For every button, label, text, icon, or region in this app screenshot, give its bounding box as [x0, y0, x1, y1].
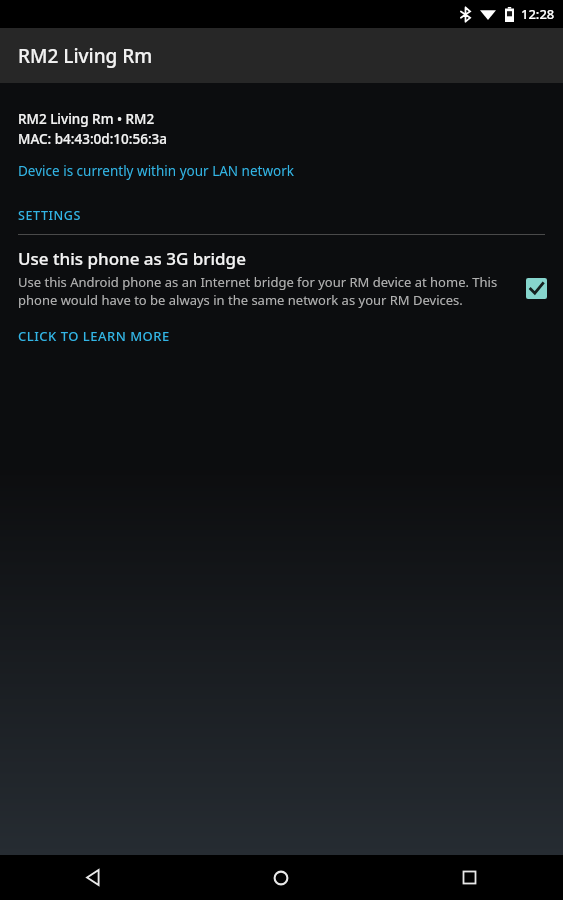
button[interactable]: Toggle 3G bridge	[523, 275, 549, 301]
button[interactable]: Use this phone as 3G bridge	[0, 245, 563, 313]
staticText: MAC: b4:43:0d:10:56:3a	[18, 130, 168, 148]
button[interactable]: Back	[0, 855, 187, 900]
staticText: CLICK TO LEARN MORE	[18, 327, 170, 345]
button[interactable]: Recent apps	[375, 855, 563, 900]
staticText: SETTINGS	[18, 207, 82, 224]
button[interactable]: CLICK TO LEARN MORE	[18, 327, 170, 345]
staticText: RM2 Living Rm	[18, 43, 153, 69]
button[interactable]: Home	[187, 855, 375, 900]
button[interactable]: Device is currently within your LAN netw…	[18, 162, 295, 180]
staticText: Use this Android phone as an Internet br…	[18, 273, 517, 309]
staticText: Device is currently within your LAN netw…	[18, 162, 295, 180]
staticText: 12:28	[521, 5, 555, 23]
staticText: RM2 Living Rm • RM2	[18, 110, 155, 128]
staticText: Use this phone as 3G bridge	[18, 247, 246, 270]
